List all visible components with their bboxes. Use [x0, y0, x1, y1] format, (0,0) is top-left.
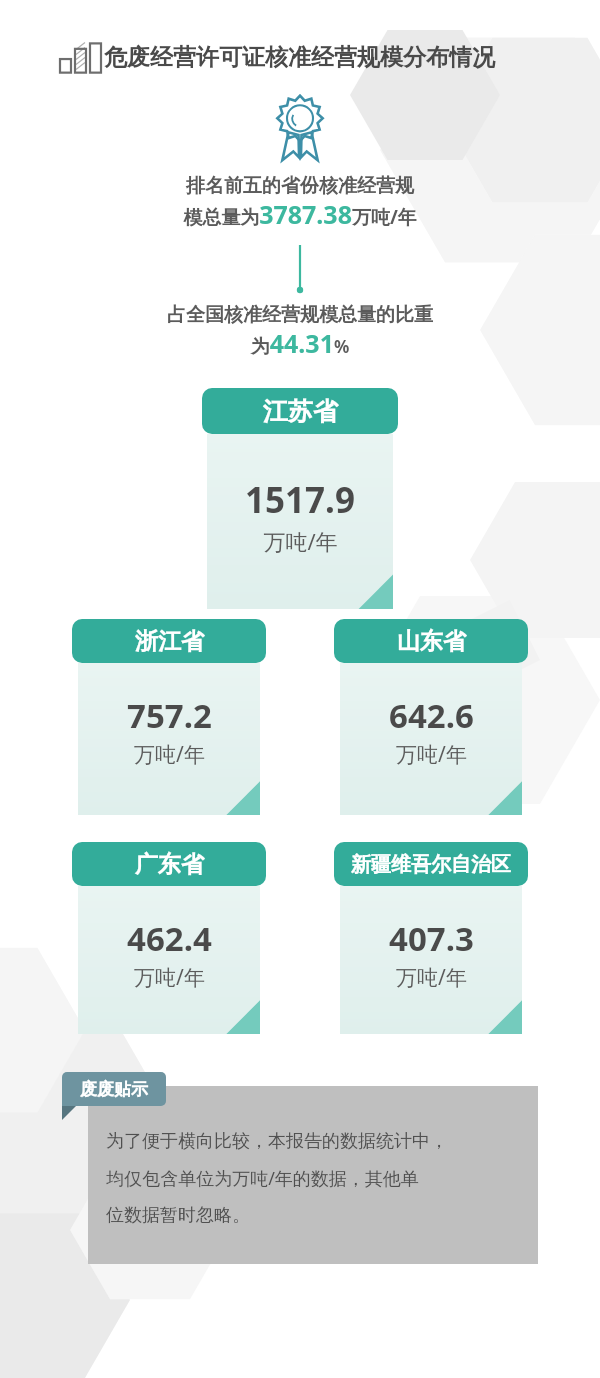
staticText: 万吨/年	[396, 740, 467, 769]
staticText: 万吨/年	[134, 963, 205, 992]
staticText: 危废经营许可证核准经营规模分布情况	[104, 43, 495, 72]
staticText: 1517.9	[245, 476, 355, 524]
staticText: 山东省	[397, 627, 466, 656]
staticText: 为了便于横向比较，本报告的数据统计中，	[106, 1130, 448, 1153]
staticText: 万吨/年	[263, 526, 338, 556]
button[interactable]: 广东省	[72, 842, 266, 1034]
staticText: 占全国核准经营规模总量的比重 为44.31%	[167, 303, 433, 360]
staticText: 757.2	[127, 693, 212, 738]
staticText: 642.6	[389, 693, 474, 738]
button[interactable]: 山东省	[334, 619, 528, 815]
button[interactable]: 江苏省	[202, 388, 398, 609]
button[interactable]: 浙江省	[72, 619, 266, 815]
staticText: 万吨/年	[134, 740, 205, 769]
other: Award medal	[269, 96, 331, 158]
staticText: 废废贴示	[80, 1079, 148, 1100]
staticText: 排名前五的省份核准经营规 模总量为3787.38万吨/年	[183, 174, 417, 231]
staticText: 广东省	[135, 850, 204, 879]
staticText: 407.3	[389, 916, 474, 961]
staticText: 新疆维吾尔自治区	[351, 852, 511, 877]
staticText: 均仅包含单位为万吨/年的数据，其他单	[106, 1166, 419, 1191]
button[interactable]: 新疆维吾尔自治区	[334, 842, 528, 1034]
staticText: 462.4	[127, 916, 212, 961]
staticText: 万吨/年	[396, 963, 467, 992]
staticText: 江苏省	[263, 396, 338, 427]
other: Bar chart	[58, 40, 92, 74]
button[interactable]: 废废贴示	[62, 1072, 166, 1106]
staticText: 位数据暂时忽略。	[106, 1204, 250, 1227]
staticText: 浙江省	[135, 627, 204, 656]
